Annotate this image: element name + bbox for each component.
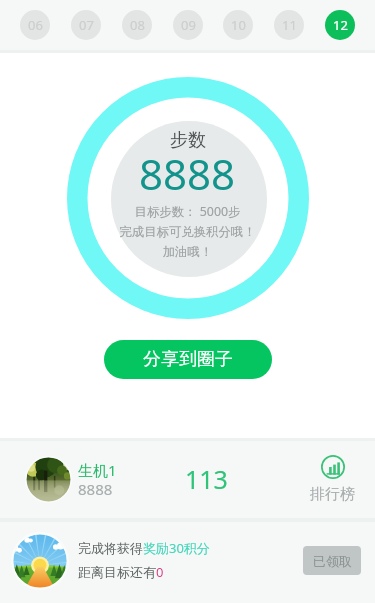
staticText: 8888 [139, 145, 236, 197]
button[interactable]: 分享到圈子 [104, 340, 272, 379]
staticText: 目标步数： 5000步 完成目标可兑换积分哦！ 加油哦！ [119, 203, 256, 260]
button[interactable]: 06 [20, 10, 50, 40]
staticText: 步数 [170, 129, 206, 152]
staticText: 8888 [78, 479, 113, 499]
button[interactable]: 已领取 [303, 546, 361, 575]
staticText: 09 [181, 16, 196, 34]
staticText: 完成将获得奖励30积分 [78, 539, 210, 557]
staticText: 10 [231, 16, 246, 34]
button[interactable]: 07 [71, 10, 101, 40]
button[interactable]: 12 [325, 10, 355, 40]
staticText: 排行榜 [310, 485, 355, 504]
staticText: 12 [333, 16, 348, 34]
button[interactable]: 09 [173, 10, 203, 40]
button[interactable]: 排行榜 [305, 455, 360, 504]
staticText: 生机1 [78, 460, 117, 480]
button[interactable]: 08 [122, 10, 152, 40]
staticText: 113 [185, 462, 228, 496]
staticText: 距离目标还有0 [78, 563, 164, 581]
staticText: 分享到圈子 [143, 348, 233, 371]
staticText: 08 [130, 16, 145, 34]
staticText: 06 [28, 16, 43, 34]
staticText: 07 [79, 16, 94, 34]
staticText: 已领取 [313, 553, 352, 569]
button[interactable]: 生机1 [0, 441, 375, 518]
button[interactable]: 10 [223, 10, 253, 40]
staticText: 11 [282, 16, 297, 34]
button[interactable]: 11 [274, 10, 304, 40]
